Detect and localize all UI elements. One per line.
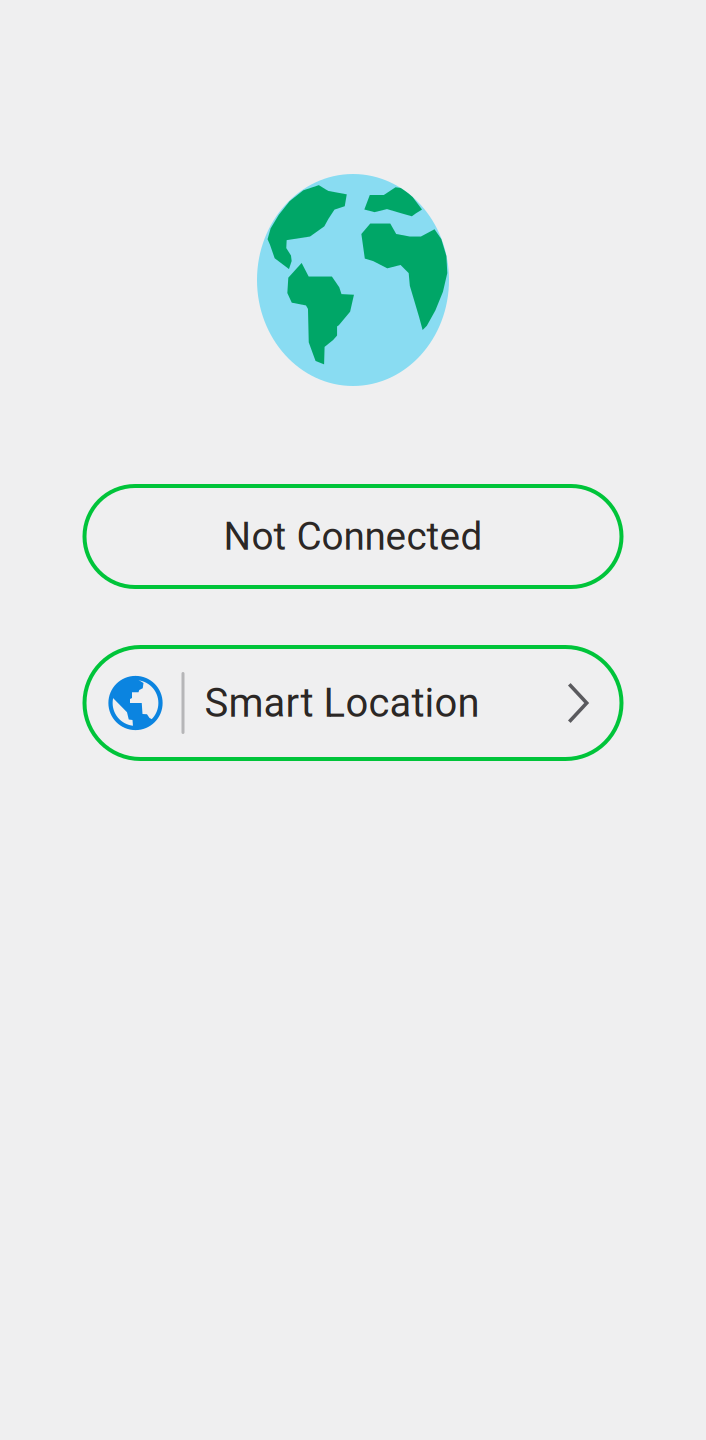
button[interactable]: Not Connected	[84, 486, 621, 587]
staticText: Smart Location	[204, 680, 479, 726]
staticText: Not Connected	[223, 514, 482, 559]
button[interactable]: Smart Location	[84, 647, 621, 759]
